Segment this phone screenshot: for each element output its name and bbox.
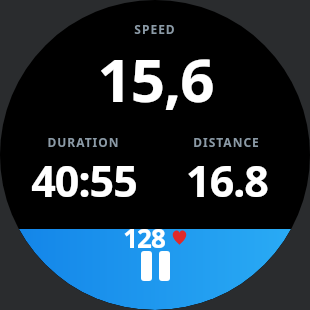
staticText: 40:55 — [31, 151, 137, 210]
staticText: SPEED — [134, 21, 176, 37]
button[interactable]: Pause workout — [0, 229, 310, 310]
staticText: DISTANCE — [193, 134, 260, 150]
staticText: 16.8 — [186, 151, 268, 210]
staticText: 15,6 — [97, 38, 214, 120]
staticText: 128 — [123, 220, 165, 255]
staticText: DURATION — [47, 134, 120, 150]
